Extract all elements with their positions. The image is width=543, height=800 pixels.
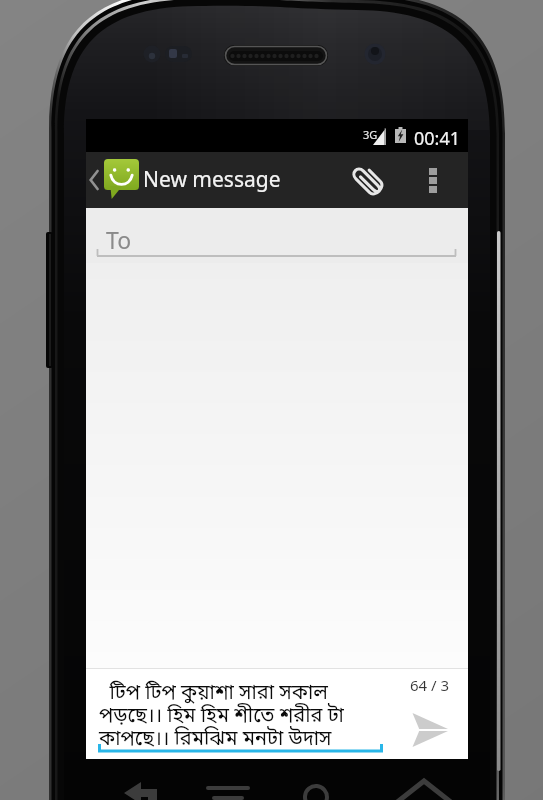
staticText: New message [143,165,281,194]
button[interactable]: Navigate up [88,152,146,208]
button[interactable]: টিপ টিপ কুয়াশা সারা সকাল পড়ছে।। হিম হি… [98,669,383,759]
button[interactable]: To [86,208,468,263]
staticText: 3G [363,127,378,142]
staticText: 00:41 [414,126,461,151]
button[interactable]: Attach [339,152,397,208]
staticText: 64 / 3 [410,675,450,695]
button[interactable]: Send [399,706,461,754]
button[interactable]: More options [408,152,458,208]
staticText: To [106,224,132,255]
staticText: টিপ টিপ কুয়াশা সারা সকাল পড়ছে।। হিম হি… [99,681,344,753]
